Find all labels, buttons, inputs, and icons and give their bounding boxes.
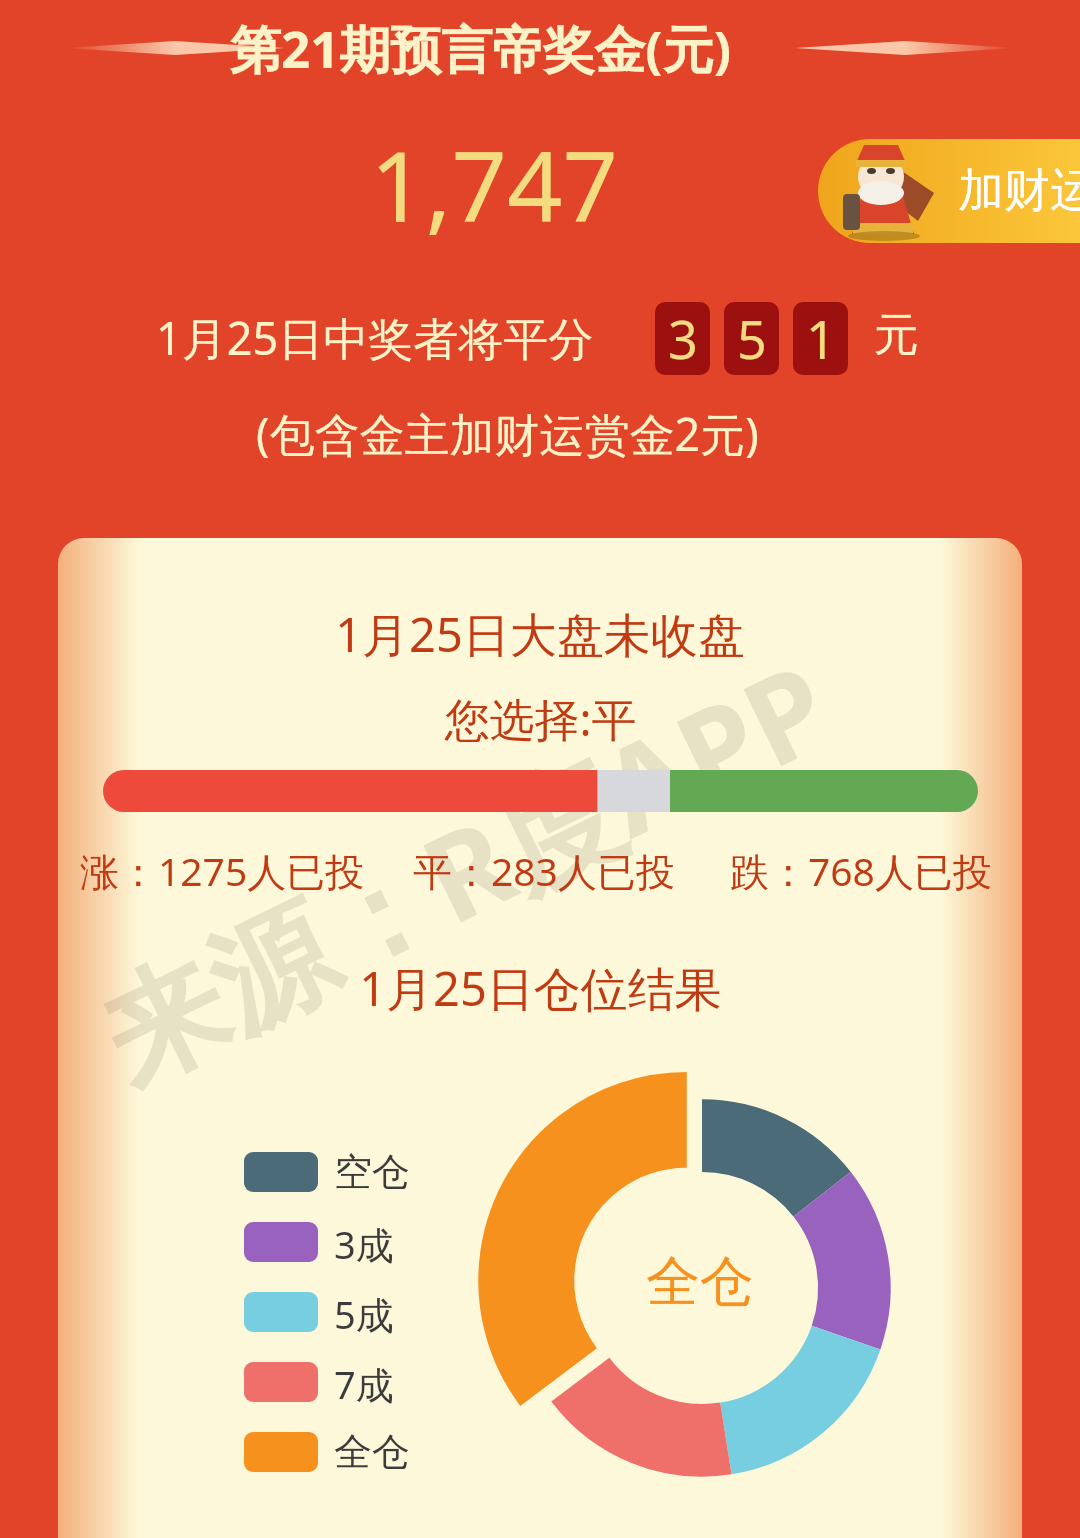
staticText: 全仓 bbox=[334, 1428, 410, 1476]
staticText: 空仓 bbox=[334, 1148, 410, 1196]
staticText: 1 bbox=[806, 303, 836, 374]
staticText: 7成 bbox=[334, 1358, 394, 1406]
button[interactable]: 全仓 bbox=[244, 1428, 414, 1476]
staticText: 加财运 bbox=[958, 162, 1080, 220]
staticText: 3成 bbox=[334, 1218, 394, 1266]
staticText: 元 bbox=[874, 307, 919, 364]
button[interactable]: 7成 bbox=[244, 1358, 414, 1406]
staticText: 来源：R度APP bbox=[72, 623, 855, 1117]
staticText: (包含金主加财运赏金2元) bbox=[256, 403, 759, 464]
staticText: 5 bbox=[737, 303, 767, 374]
staticText: 跌：768人已投 bbox=[730, 844, 992, 897]
staticText: 涨：1275人已投 bbox=[80, 844, 365, 897]
button[interactable]: 3成 bbox=[244, 1218, 414, 1266]
staticText: 5成 bbox=[334, 1288, 394, 1336]
staticText: 1月25日大盘未收盘 bbox=[335, 602, 745, 666]
staticText: 第21期预言帝奖金(元) bbox=[230, 13, 731, 83]
staticText: 3 bbox=[668, 303, 698, 374]
staticText: 1月25日仓位结果 bbox=[359, 956, 722, 1020]
staticText: 1月25日中奖者将平分 bbox=[156, 307, 594, 368]
staticText: 您选择:平 bbox=[444, 688, 637, 749]
button[interactable]: 空仓 bbox=[244, 1148, 414, 1196]
staticText: 全仓 bbox=[646, 1248, 754, 1316]
staticText: 平：283人已投 bbox=[413, 844, 675, 897]
staticText: 1,747 bbox=[370, 118, 618, 250]
button[interactable]: 加财运 bbox=[818, 139, 1080, 243]
button[interactable]: 5成 bbox=[244, 1288, 414, 1336]
